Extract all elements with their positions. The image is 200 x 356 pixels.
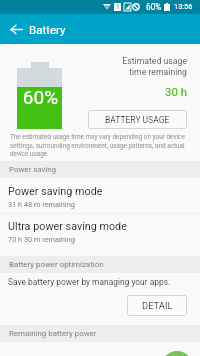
staticText: 1 bbox=[116, 3, 120, 11]
staticText: DETAIL bbox=[142, 300, 173, 311]
staticText: 60% bbox=[18, 86, 63, 108]
staticText: Remaining battery power bbox=[9, 329, 97, 338]
staticText: 31 h 48 m remaining bbox=[8, 200, 75, 209]
staticText: The estimated usage time may vary depend… bbox=[10, 133, 188, 157]
staticText: 30 h bbox=[87, 85, 187, 98]
button[interactable]: Power saving mode bbox=[0, 181, 200, 215]
staticText: 13:56 bbox=[174, 2, 193, 11]
staticText: BATTERY USAGE bbox=[105, 115, 170, 125]
staticText: Battery power optimization bbox=[9, 260, 104, 269]
staticText: Power saving mode bbox=[8, 185, 103, 198]
button[interactable]: BATTERY USAGE bbox=[88, 110, 187, 129]
staticText: Ultra power saving mode bbox=[8, 220, 127, 233]
button[interactable]: Navigate up bbox=[9, 22, 24, 37]
staticText: 60% bbox=[146, 2, 162, 12]
staticText: 70 h 30 m remaining bbox=[8, 235, 75, 244]
staticText: Estimated usage time remaining bbox=[87, 56, 187, 77]
button[interactable]: Ultra power saving mode bbox=[0, 216, 200, 250]
button[interactable]: DETAIL bbox=[127, 295, 187, 316]
staticText: Save battery power by managing your apps… bbox=[8, 277, 171, 287]
staticText: Battery bbox=[29, 23, 66, 36]
staticText: Power saving bbox=[9, 165, 57, 174]
